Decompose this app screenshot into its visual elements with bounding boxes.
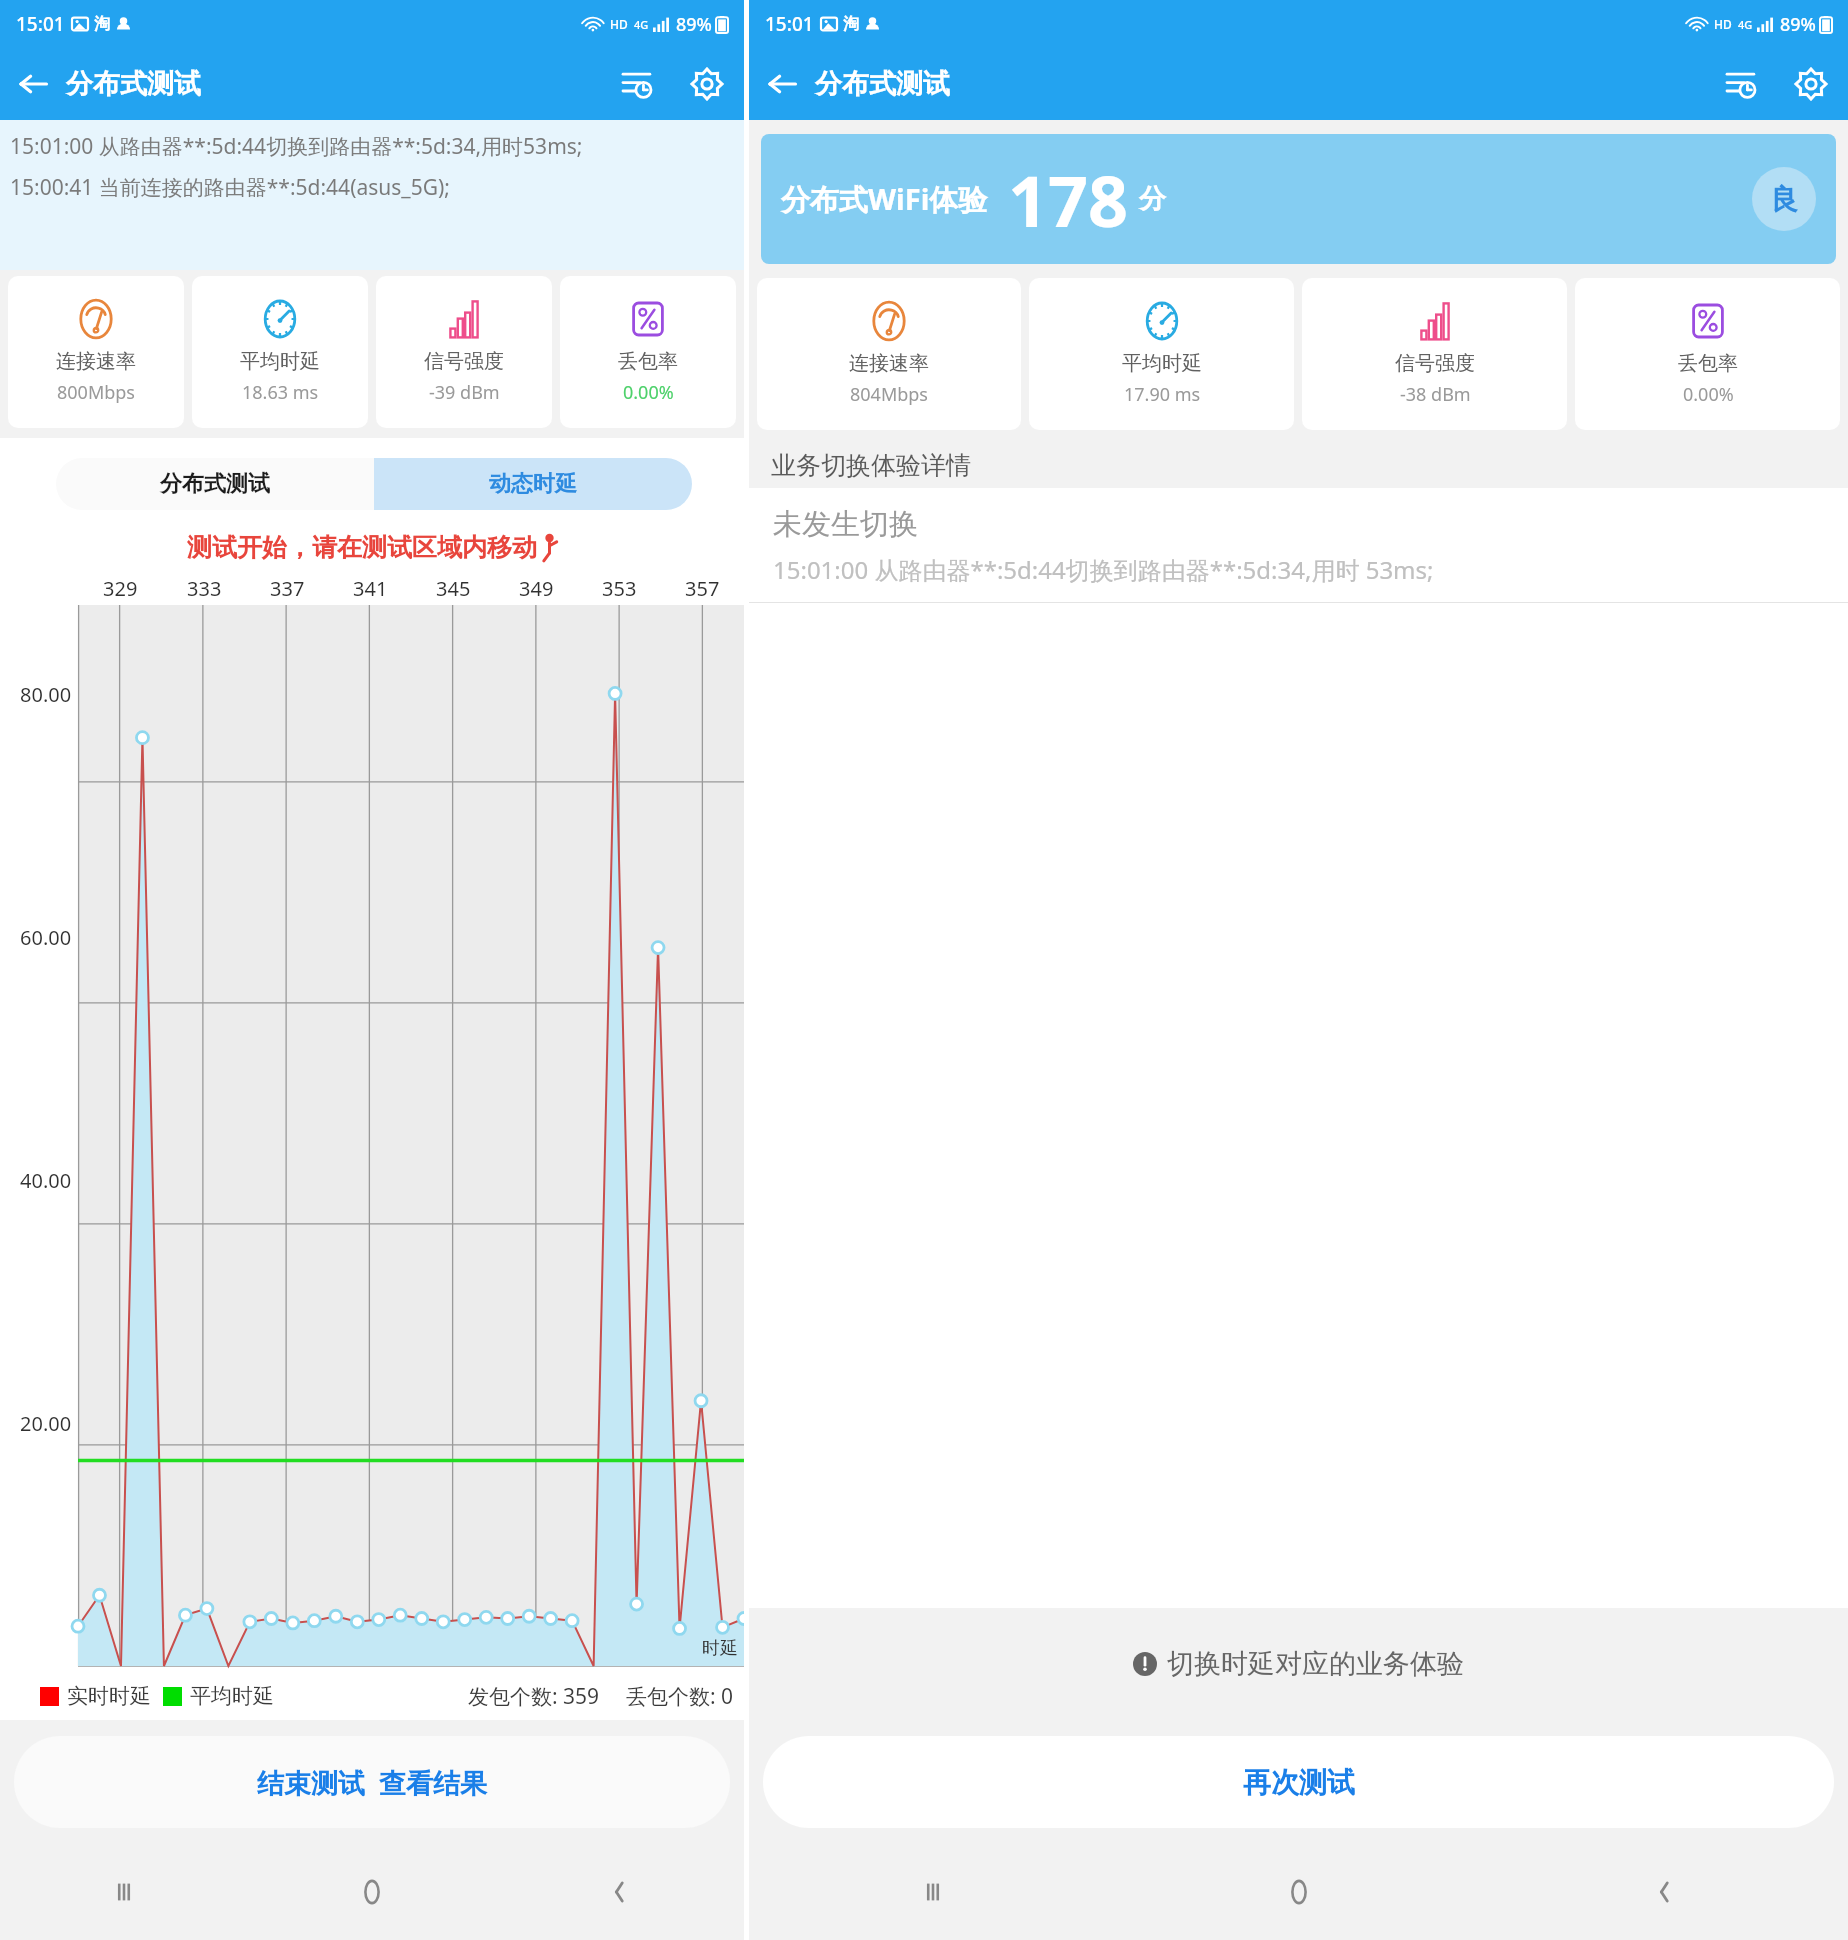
staticText: 实时时延: [67, 1683, 151, 1709]
staticText: 15:01: [16, 11, 65, 37]
staticText: 分布式WiFi体验: [781, 179, 988, 219]
staticText: 未发生切换: [773, 506, 918, 543]
staticText: 345: [436, 575, 471, 602]
staticText: 结束测试 查看结果: [257, 1764, 488, 1801]
staticText: 再次测试: [1243, 1765, 1355, 1800]
staticText: 178: [1008, 152, 1129, 247]
button[interactable]: 平均时延: [1029, 278, 1294, 430]
staticText: 时延: [702, 1637, 738, 1660]
button[interactable]: 信号强度: [376, 276, 552, 428]
staticText: 业务切换体验详情: [771, 450, 971, 481]
button[interactable]: Back: [749, 48, 815, 120]
staticText: 4G: [1738, 17, 1753, 32]
staticText: HD: [1714, 16, 1732, 32]
staticText: -39 dBm: [429, 380, 500, 405]
button[interactable]: Back: [496, 1844, 744, 1940]
staticText: 40.00: [20, 1167, 72, 1194]
staticText: 分: [1139, 182, 1166, 216]
staticText: 15:01:00 从路由器**:5d:44切换到路由器**:5d:34,用时 5…: [773, 553, 1434, 586]
staticText: 349: [519, 575, 554, 602]
button[interactable]: 结束测试 查看结果: [14, 1736, 730, 1828]
staticText: 分布式测试: [815, 67, 950, 101]
button[interactable]: Settings: [670, 48, 744, 120]
staticText: 89%: [1780, 12, 1816, 37]
staticText: 平均时延: [190, 1683, 274, 1709]
button[interactable]: 分布式WiFi体验: [761, 134, 1836, 264]
button[interactable]: Back: [0, 48, 66, 120]
staticText: 淘: [94, 14, 110, 34]
staticText: 0.00%: [623, 380, 674, 405]
staticText: 发包个数: 359: [468, 1682, 600, 1711]
staticText: 15:01:00 从路由器**:5d:44切换到路由器**:5d:34,用时53…: [10, 132, 583, 161]
button[interactable]: Back: [1482, 1844, 1848, 1940]
staticText: 329: [103, 575, 138, 602]
staticText: 80.00: [20, 681, 72, 708]
staticText: 信号强度: [1395, 351, 1475, 376]
staticText: 4G: [634, 17, 649, 32]
button[interactable]: 动态时延: [374, 458, 692, 510]
staticText: 丢包个数: 0: [626, 1682, 734, 1711]
button[interactable]: History: [1708, 51, 1774, 117]
button[interactable]: Home: [1116, 1844, 1482, 1940]
button[interactable]: History: [604, 51, 670, 117]
staticText: 15:00:41 当前连接的路由器**:5d:44(asus_5G);: [10, 173, 450, 202]
staticText: 丢包率: [618, 349, 678, 374]
staticText: 337: [270, 575, 305, 602]
staticText: 连接速率: [849, 351, 929, 376]
staticText: 丢包率: [1678, 351, 1738, 376]
staticText: 17.90 ms: [1124, 382, 1201, 407]
staticText: 60.00: [20, 924, 72, 951]
staticText: 分布式测试: [160, 470, 270, 498]
staticText: 357: [685, 575, 720, 602]
staticText: 分布式测试: [66, 67, 201, 101]
staticText: 连接速率: [56, 349, 136, 374]
button[interactable]: Settings: [1774, 48, 1848, 120]
staticText: 804Mbps: [850, 382, 928, 407]
button[interactable]: 丢包率: [1575, 278, 1840, 430]
staticText: 淘: [843, 14, 859, 34]
staticText: 动态时延: [489, 470, 577, 498]
staticText: 341: [353, 575, 388, 602]
staticText: 切换时延对应的业务体验: [1167, 1647, 1464, 1681]
staticText: HD: [610, 16, 628, 32]
staticText: 平均时延: [240, 349, 320, 374]
button[interactable]: 连接速率: [757, 278, 1021, 430]
button[interactable]: 平均时延: [192, 276, 368, 428]
staticText: 良: [1770, 182, 1798, 217]
button[interactable]: 丢包率: [560, 276, 736, 428]
staticText: 信号强度: [424, 349, 504, 374]
staticText: 89%: [676, 12, 712, 37]
button[interactable]: 信号强度: [1302, 278, 1567, 430]
staticText: -38 dBm: [1400, 382, 1471, 407]
staticText: 20.00: [20, 1410, 72, 1437]
staticText: 333: [187, 575, 222, 602]
staticText: 平均时延: [1122, 351, 1202, 376]
staticText: 353: [602, 575, 637, 602]
button[interactable]: 再次测试: [763, 1736, 1834, 1828]
button[interactable]: Recent apps: [0, 1844, 248, 1940]
staticText: 15:01: [765, 11, 814, 37]
button[interactable]: Recent apps: [749, 1844, 1116, 1940]
staticText: 0.00%: [1683, 382, 1734, 407]
staticText: 18.63 ms: [242, 380, 319, 405]
button[interactable]: 连接速率: [8, 276, 184, 428]
staticText: 测试开始，请在测试区域内移动: [187, 532, 537, 563]
button[interactable]: 分布式测试: [56, 458, 374, 510]
button[interactable]: Home: [248, 1844, 496, 1940]
staticText: 800Mbps: [57, 380, 135, 405]
